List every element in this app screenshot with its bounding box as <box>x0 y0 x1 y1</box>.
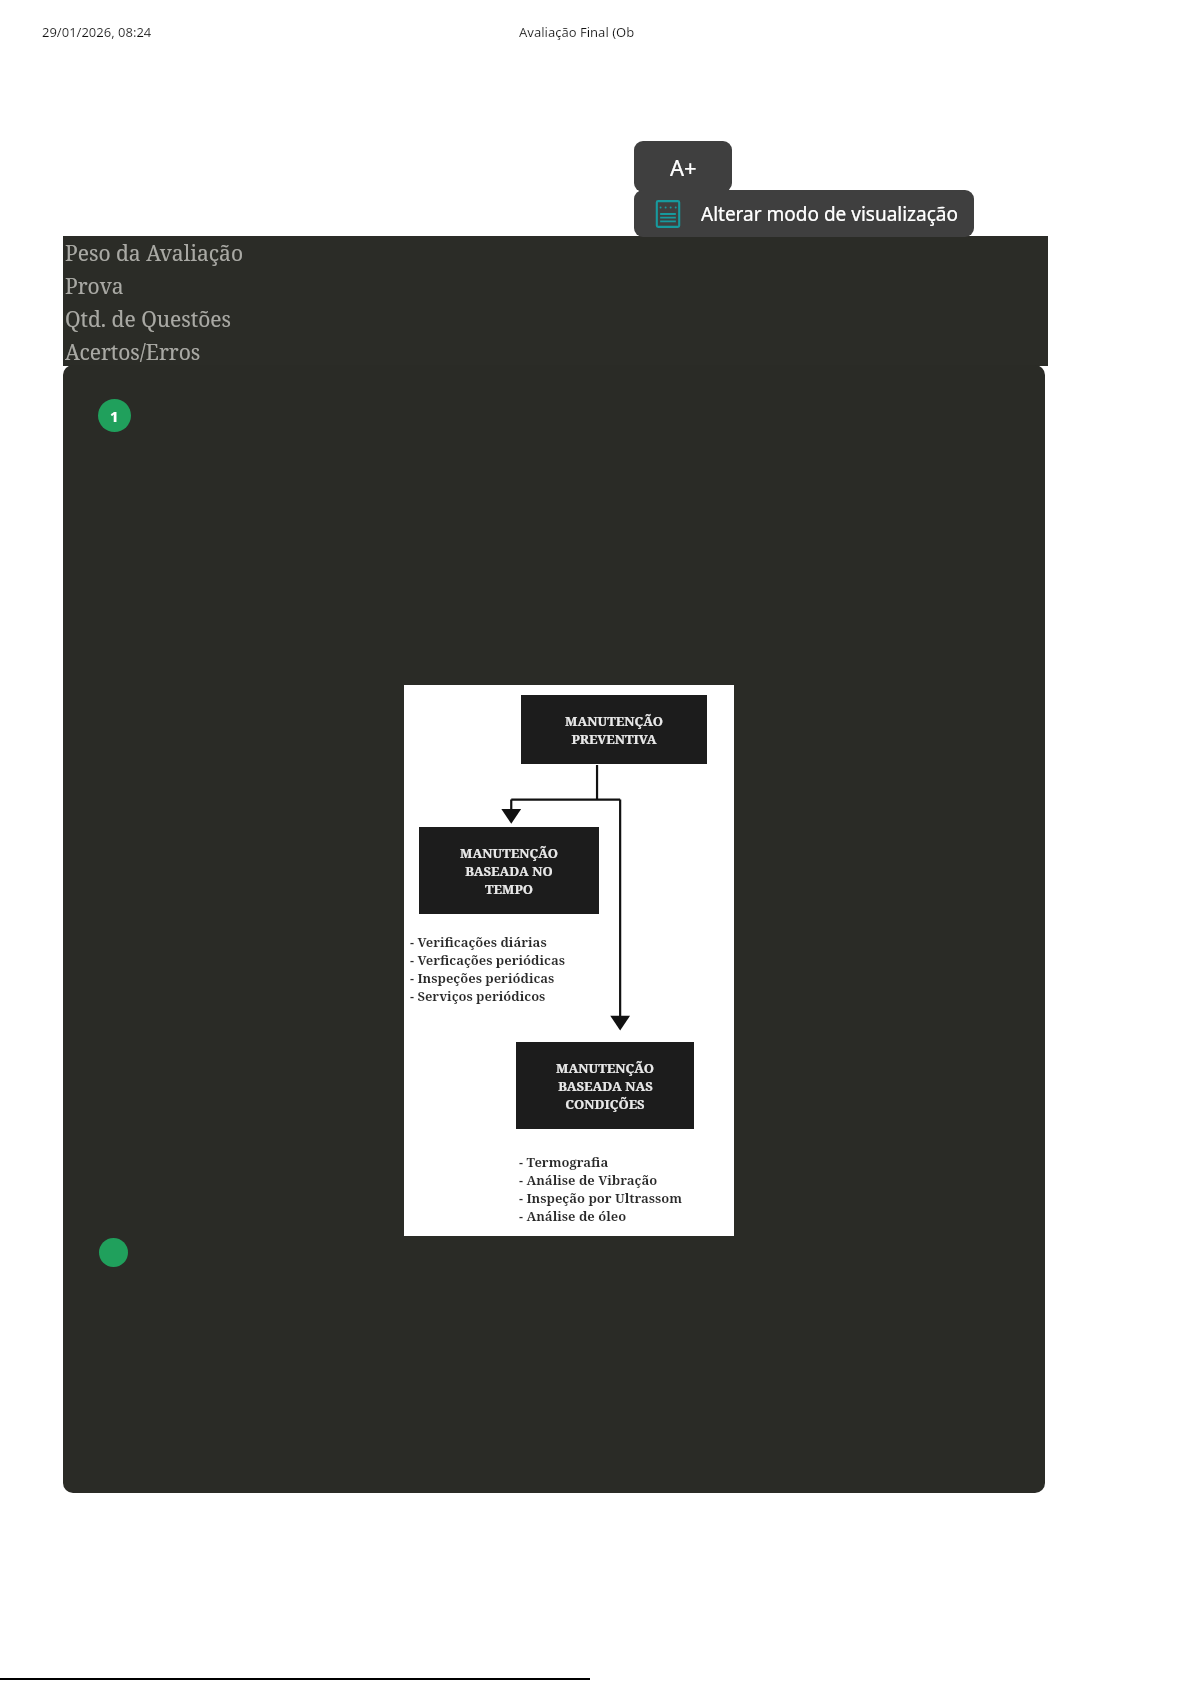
staticText: - Análise de óleo <box>519 1207 627 1225</box>
other: Alterar modo de visualização <box>654 200 682 228</box>
staticText: Acertos/Erros <box>65 338 201 362</box>
staticText: Avaliação Final (Ob <box>519 23 635 41</box>
staticText: CONDIÇÕES <box>565 1095 645 1113</box>
staticText: 1 <box>110 406 119 426</box>
staticText: Peso da Avaliação <box>65 239 243 268</box>
staticText: MANUTENÇÃO <box>460 844 558 862</box>
staticText: TEMPO <box>485 880 533 898</box>
staticText: Qtd. de Questões <box>65 305 232 334</box>
staticText: BASEADA NO <box>465 862 553 880</box>
button[interactable]: A+ <box>634 141 732 192</box>
button[interactable]: 1 <box>98 399 131 432</box>
button[interactable]: Alterar modo de visualização <box>634 190 974 237</box>
button[interactable]: 1 <box>63 365 1045 1493</box>
staticText: 29/01/2026, 08:24 <box>42 23 152 41</box>
staticText: PREVENTIVA <box>571 730 657 748</box>
staticText: Prova <box>65 272 124 301</box>
staticText: MANUTENÇÃO <box>565 712 663 730</box>
staticText: - Verificações diárias <box>410 933 547 951</box>
staticText: A+ <box>670 152 697 182</box>
staticText: - Verficações periódicas <box>410 951 565 969</box>
staticText: - Análise de Vibração <box>519 1171 658 1189</box>
staticText: MANUTENÇÃO <box>556 1059 654 1077</box>
staticText: - Serviços periódicos <box>410 987 546 1005</box>
staticText: - Inspeção por Ultrassom <box>519 1189 683 1207</box>
staticText: - Termografia <box>519 1153 609 1171</box>
staticText: Alterar modo de visualização <box>701 201 958 227</box>
staticText: - Inspeções periódicas <box>410 969 555 987</box>
button[interactable] <box>99 1238 128 1267</box>
staticText: BASEADA NAS <box>558 1077 653 1095</box>
